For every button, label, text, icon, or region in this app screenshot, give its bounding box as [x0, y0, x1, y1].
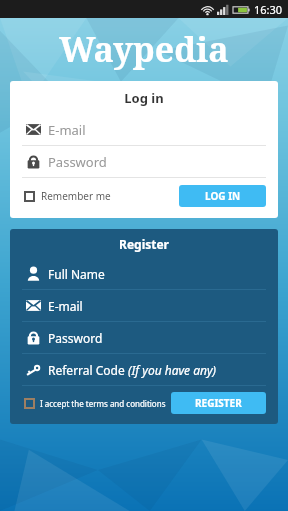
other: Email: [26, 298, 41, 313]
staticText: 16:30: [254, 2, 283, 17]
staticText: Remember me: [41, 189, 111, 203]
button[interactable]: Full name: [22, 258, 266, 289]
staticText: Password: [48, 330, 103, 346]
button[interactable]: Password: [22, 146, 266, 177]
button[interactable]: I accept the terms and conditions: [22, 394, 168, 413]
button[interactable]: REGISTER: [171, 392, 266, 414]
staticText: Waypedia: [0, 26, 288, 72]
staticText: I accept the terms and conditions: [40, 398, 166, 409]
staticText: Register: [22, 236, 266, 252]
button[interactable]: Password: [22, 322, 266, 353]
staticText: REGISTER: [195, 396, 242, 410]
other: Referral code: [26, 362, 41, 377]
button[interactable]: Email: [22, 114, 266, 145]
staticText: LOG IN: [205, 189, 241, 203]
button[interactable]: Remember me: [22, 185, 113, 207]
other: Full name: [26, 266, 41, 281]
staticText: Referral Code: [48, 362, 128, 378]
button[interactable]: Email: [22, 290, 266, 321]
other: Password: [26, 330, 41, 345]
button[interactable]: LOG IN: [179, 185, 266, 207]
staticText: E-mail: [48, 298, 83, 314]
staticText: Log in: [22, 89, 266, 107]
staticText: Full Name: [48, 266, 105, 282]
staticText: (If you have any): [128, 362, 217, 378]
staticText: E-mail: [48, 121, 86, 139]
other: Email: [26, 122, 41, 137]
other: Password: [26, 154, 41, 169]
staticText: Password: [48, 153, 107, 171]
